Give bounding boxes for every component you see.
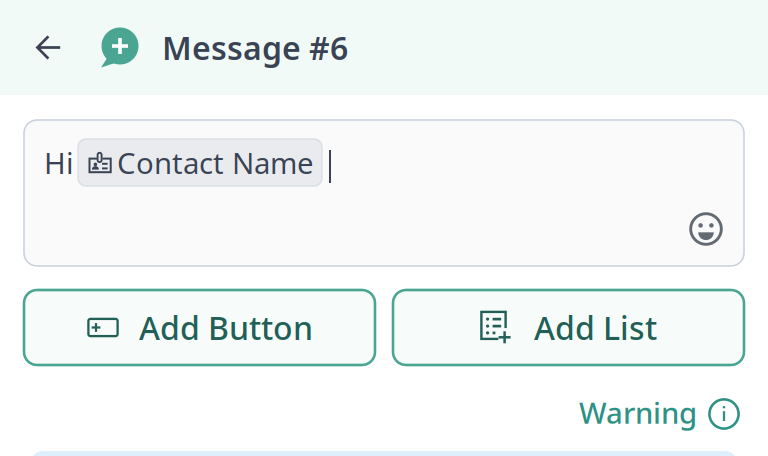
staticText: Hi xyxy=(44,143,74,182)
staticText: Contact Name xyxy=(117,143,314,182)
button[interactable]: Add List xyxy=(393,290,744,365)
button[interactable]: Contact Name xyxy=(78,139,322,186)
staticText: Warning xyxy=(579,393,697,432)
staticText: Add Button xyxy=(139,306,313,349)
button[interactable]: Back xyxy=(0,12,101,82)
button[interactable]: Add Button xyxy=(24,290,375,365)
button[interactable]: Insert emoji xyxy=(689,212,723,246)
staticText: Add List xyxy=(534,306,657,349)
button[interactable]: Warning xyxy=(579,387,740,438)
staticText: Message #6 xyxy=(162,26,348,69)
